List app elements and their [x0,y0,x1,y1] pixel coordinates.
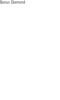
staticText: Bonus Diamond [0,0,25,4]
